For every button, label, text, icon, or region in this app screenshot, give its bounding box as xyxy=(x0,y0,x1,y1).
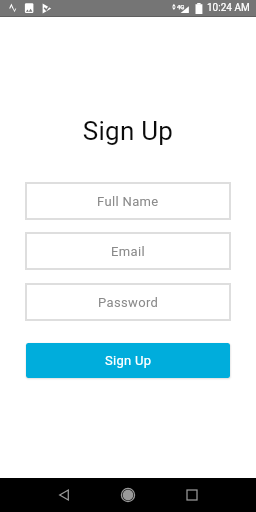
staticText: Password xyxy=(98,295,159,310)
button[interactable]: Sign Up xyxy=(26,343,230,378)
button[interactable]: Home xyxy=(96,478,160,512)
staticText: Full Name xyxy=(97,194,159,209)
button[interactable]: Full Name xyxy=(25,182,231,220)
button[interactable]: Recent apps xyxy=(160,478,224,512)
staticText: 10:24 AM xyxy=(207,2,250,14)
staticText: 4G xyxy=(177,3,185,10)
button[interactable]: Email xyxy=(25,232,231,270)
button[interactable]: Back xyxy=(32,478,96,512)
staticText: Sign Up xyxy=(105,353,152,368)
staticText: Sign Up xyxy=(0,116,256,146)
staticText: Email xyxy=(111,244,145,259)
button[interactable]: Password xyxy=(25,283,231,321)
